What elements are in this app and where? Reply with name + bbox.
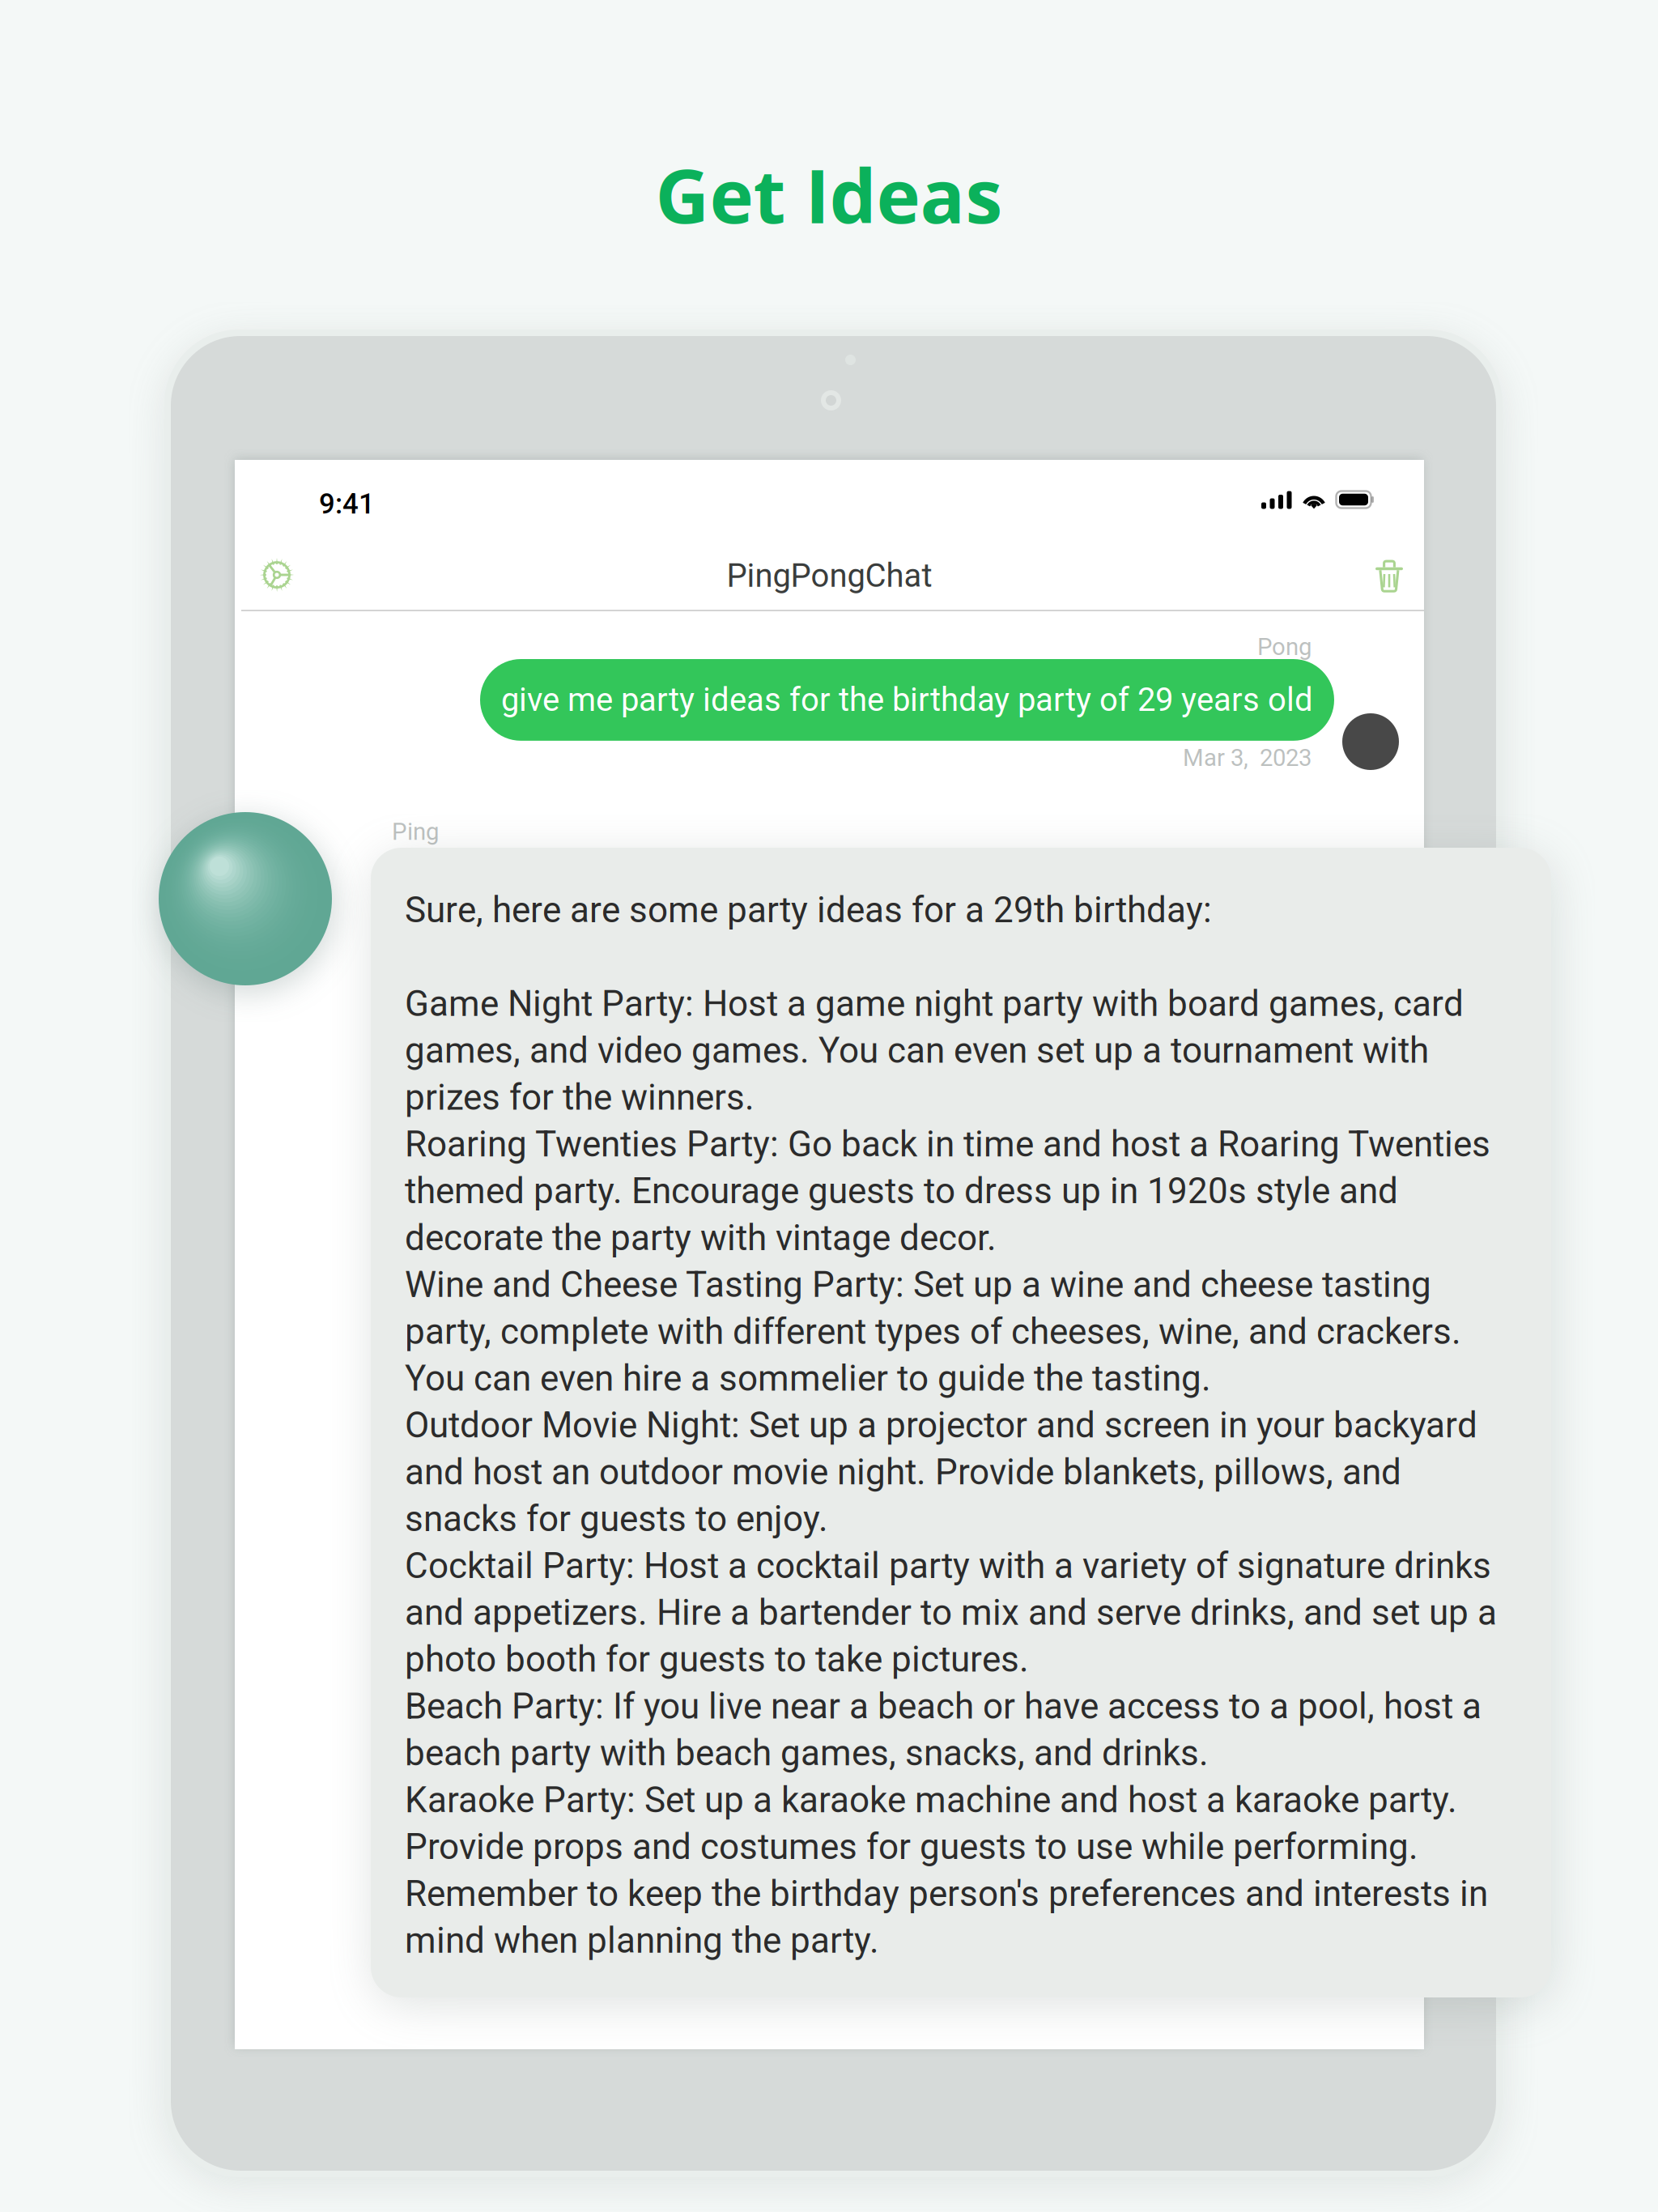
- button[interactable]: give me party ideas for the birthday par…: [480, 659, 1334, 741]
- button[interactable]: Settings: [242, 540, 312, 610]
- staticText: Sure, here are some party ideas for a 29…: [405, 887, 1497, 1964]
- staticText: 9:41: [319, 487, 375, 520]
- staticText: Pong: [1257, 633, 1312, 661]
- button[interactable]: Sure, here are some party ideas for a 29…: [371, 848, 1551, 1997]
- staticText: Mar 3, 2023: [1183, 744, 1312, 772]
- staticText: Get Ideas: [655, 144, 1003, 245]
- staticText: give me party ideas for the birthday par…: [501, 681, 1313, 719]
- button[interactable]: Delete conversation: [1354, 542, 1424, 611]
- button[interactable]: Pong profile: [1342, 713, 1399, 770]
- staticText: PingPongChat: [727, 557, 932, 595]
- staticText: Ping: [392, 818, 439, 846]
